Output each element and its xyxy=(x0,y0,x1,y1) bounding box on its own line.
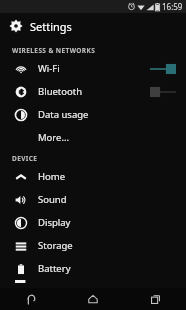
staticText: Storage xyxy=(38,239,73,252)
staticText: Battery xyxy=(38,262,71,275)
button[interactable]: Battery xyxy=(0,257,186,280)
staticText: Wi-Fi xyxy=(38,62,60,75)
button[interactable]: Data usage xyxy=(0,103,186,126)
button[interactable]: Bluetooth xyxy=(0,80,186,103)
staticText: WIRELESS & NETWORKS xyxy=(12,46,96,55)
button[interactable]: Display xyxy=(0,211,186,234)
staticText: Sound xyxy=(38,193,67,206)
button[interactable]: Off xyxy=(150,85,176,99)
button[interactable]: Wi-Fi xyxy=(0,57,186,80)
button[interactable] xyxy=(0,280,186,292)
button[interactable]: Home xyxy=(73,288,113,310)
button[interactable]: Recent apps xyxy=(135,288,175,310)
staticText: Bluetooth xyxy=(38,85,83,98)
button[interactable]: Home xyxy=(0,165,186,188)
button[interactable]: Back xyxy=(11,288,51,310)
staticText: Settings xyxy=(30,19,72,34)
button[interactable]: Sound xyxy=(0,188,186,211)
button[interactable]: Storage xyxy=(0,234,186,257)
button[interactable]: On xyxy=(150,62,176,76)
staticText: DEVICE xyxy=(12,154,38,163)
staticText: Data usage xyxy=(38,108,89,121)
staticText: 16:59 xyxy=(162,1,183,12)
staticText: More... xyxy=(38,131,70,144)
staticText: Display xyxy=(38,216,71,229)
staticText: Home xyxy=(38,170,66,183)
button[interactable]: More... xyxy=(0,126,186,149)
